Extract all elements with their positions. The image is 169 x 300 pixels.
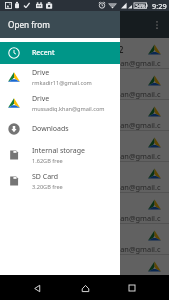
staticText: Shared with you by mussadiq.khan@gmail.c… xyxy=(8,275,161,285)
staticText: Budget planner 2017 xyxy=(8,261,145,272)
button[interactable]: Project requirements xyxy=(0,100,169,131)
button[interactable]: Downloads xyxy=(0,116,120,142)
button[interactable]: Recent apps xyxy=(121,277,143,299)
staticText: 34% xyxy=(135,2,146,9)
staticText: Shared with you by mussadiq.khan@gmail.c… xyxy=(8,58,161,68)
button[interactable]: Back xyxy=(26,277,48,299)
staticText: mussadiq.khan@gmail.com xyxy=(32,105,105,113)
staticText: Invoice draft (003) xyxy=(8,168,145,179)
staticText: Recent xyxy=(32,48,55,58)
staticText: 9:29 xyxy=(152,1,167,11)
staticText: Shared with you by mussadiq.khan@gmail.c… xyxy=(8,89,161,99)
button[interactable]: Meeting notes 21-08 xyxy=(0,224,169,255)
button[interactable]: Floor plan - REV 2 xyxy=(0,193,169,224)
button[interactable]: Home xyxy=(74,277,96,299)
button[interactable]: Recent xyxy=(0,42,120,64)
staticText: Drive xyxy=(32,94,50,104)
button[interactable]: Invoice draft (003) xyxy=(0,162,169,193)
staticText: Shared with you by mussadiq.khan@gmail.c… xyxy=(8,182,161,192)
staticText: 3.20GB free xyxy=(32,183,63,191)
staticText: Shared with you by mussadiq.khan@gmail.c… xyxy=(8,151,161,161)
staticText: Shared with you by mussadiq.khan@gmail.c… xyxy=(8,244,161,254)
button[interactable]: Budget planner 2017 xyxy=(0,255,169,286)
staticText: 1.62GB free xyxy=(32,157,63,165)
button[interactable]: Drive xyxy=(0,64,120,90)
staticText: Drive xyxy=(32,68,50,78)
staticText: IMG_20170819_184903 (1) xyxy=(8,75,145,86)
button[interactable]: Screenshot_20170820-093352 xyxy=(0,38,169,69)
staticText: Shared with you by mussadiq.khan@gmail.c… xyxy=(8,213,161,223)
staticText: Downloads xyxy=(32,124,69,134)
staticText: Meeting notes 21-08 xyxy=(8,230,145,241)
button[interactable]: IMG_20170819_184903 (1) xyxy=(0,69,169,100)
staticText: Floor plan - REV 2 xyxy=(8,199,145,210)
staticText: Project requirements xyxy=(8,106,145,117)
button[interactable]: Drive xyxy=(0,90,120,116)
button[interactable]: More options xyxy=(149,17,165,33)
staticText: Bank statement Aug 2017 xyxy=(8,137,145,148)
staticText: Shared with you by mussadiq.khan@gmail.c… xyxy=(8,120,161,130)
staticText: Screenshot_20170820-093352 xyxy=(8,44,145,55)
staticText: Open from xyxy=(8,19,50,30)
button[interactable]: Internal storage xyxy=(0,142,120,168)
staticText: SD Card xyxy=(32,172,59,182)
button[interactable]: Bank statement Aug 2017 xyxy=(0,131,169,162)
button[interactable]: SD Card xyxy=(0,168,120,194)
staticText: Internal storage xyxy=(32,146,85,156)
staticText: rmkadir11@gmail.com xyxy=(32,79,92,87)
